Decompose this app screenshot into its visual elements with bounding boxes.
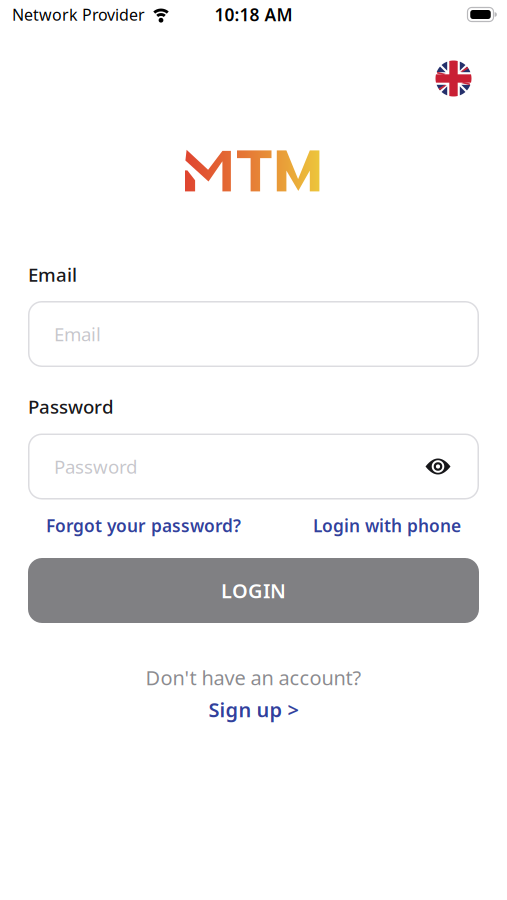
staticText: Network Provider <box>12 4 145 25</box>
staticText: Email <box>28 262 77 287</box>
staticText: Password <box>54 454 137 479</box>
staticText: Don't have an account? <box>145 664 361 691</box>
button[interactable]: Sign up > <box>208 696 298 723</box>
button[interactable]: Password <box>28 433 479 499</box>
button[interactable]: Email <box>28 301 479 367</box>
button[interactable]: Change language <box>435 60 471 96</box>
button[interactable]: Show password <box>417 450 459 483</box>
staticText: Login with phone <box>313 514 461 537</box>
button[interactable]: Forgot your password? <box>46 514 241 537</box>
staticText: Password <box>28 394 114 419</box>
button[interactable]: Login with phone <box>313 514 461 537</box>
staticText: LOGIN <box>221 577 286 604</box>
staticText: Email <box>54 322 101 346</box>
button[interactable]: LOGIN <box>28 558 479 623</box>
staticText: 10:18 AM <box>214 3 292 26</box>
staticText: Forgot your password? <box>46 514 241 537</box>
staticText: Sign up > <box>208 696 298 723</box>
